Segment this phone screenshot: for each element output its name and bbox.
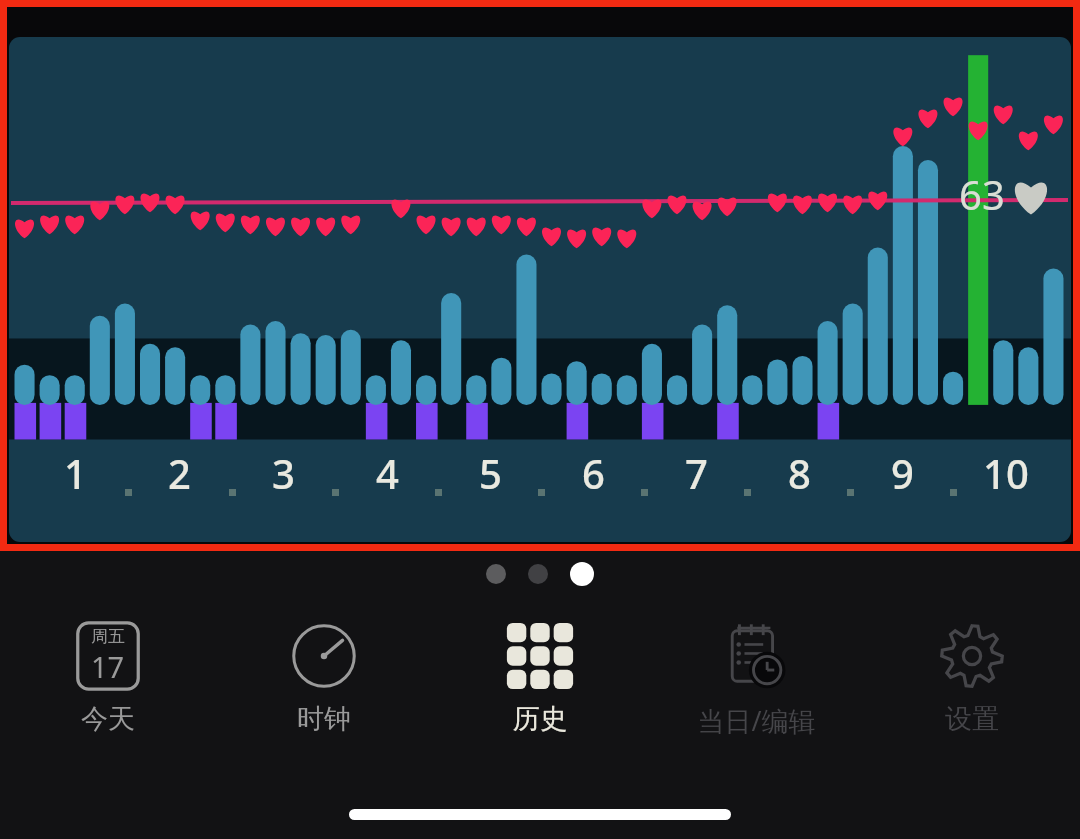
staticText: 2 (168, 446, 191, 500)
button[interactable]: 1 (9, 37, 1071, 542)
button[interactable]: Page (486, 564, 506, 584)
staticText: 6 (582, 446, 605, 500)
button[interactable]: 历史 (432, 606, 648, 736)
other: 历史 (504, 620, 576, 692)
button[interactable]: 当日/编辑 (648, 606, 864, 739)
other: 时钟 (288, 620, 360, 692)
staticText: 当日/编辑 (697, 702, 816, 739)
staticText: 4 (376, 446, 399, 500)
staticText: 历史 (513, 702, 567, 736)
staticText: 9 (891, 446, 914, 500)
button[interactable]: Page (570, 562, 594, 586)
staticText: 10 (983, 446, 1029, 500)
other: 今天 (72, 620, 144, 692)
staticText: 5 (479, 446, 502, 500)
other: 设置 (936, 620, 1008, 692)
staticText: 3 (272, 446, 295, 500)
staticText: 7 (685, 446, 708, 500)
staticText: 今天 (81, 702, 135, 736)
staticText: 8 (788, 446, 811, 500)
staticText: 时钟 (297, 702, 351, 736)
staticText: 17 (91, 647, 125, 686)
button[interactable]: 设置 (864, 606, 1080, 736)
staticText: 周五 (91, 626, 125, 647)
staticText: 1 (64, 446, 87, 500)
button[interactable]: Page (528, 564, 548, 584)
staticText: 设置 (945, 702, 999, 736)
other: 当日/编辑 (720, 620, 792, 692)
button[interactable]: 今天 (0, 606, 216, 736)
button[interactable]: 时钟 (216, 606, 432, 736)
staticText: 63 (959, 167, 1005, 221)
